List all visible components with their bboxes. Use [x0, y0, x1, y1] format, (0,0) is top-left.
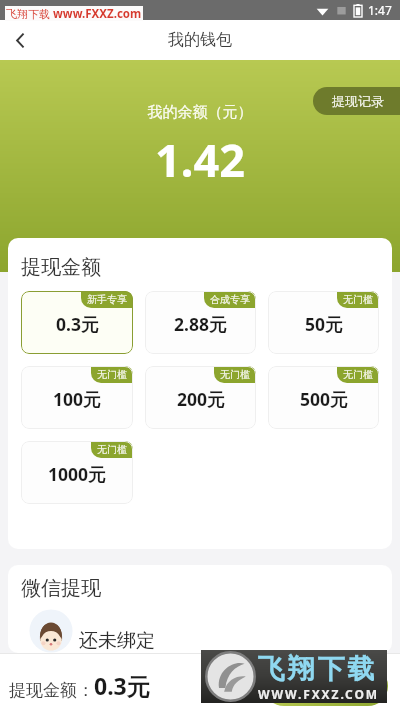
staticText: 无门槛: [343, 368, 373, 381]
staticText: 无门槛: [220, 368, 250, 381]
staticText: WWW.FXXZ.COM: [258, 686, 380, 702]
staticText: 0.3元: [94, 670, 150, 701]
staticText: 提现金额: [21, 255, 101, 280]
button[interactable]: 无门槛: [268, 366, 379, 429]
staticText: 提现金额：: [9, 680, 94, 701]
staticText: 1000元: [48, 462, 106, 486]
staticText: 还未绑定: [79, 629, 155, 653]
button[interactable]: 还未绑定: [21, 609, 379, 653]
button[interactable]: 新手专享: [21, 291, 133, 354]
staticText: 微信提现: [21, 576, 101, 601]
button[interactable]: 无门槛: [21, 366, 133, 429]
staticText: 0.3元: [56, 312, 99, 336]
staticText: 我的余额（元）: [0, 103, 400, 122]
staticText: 合成专享: [210, 293, 250, 306]
button[interactable]: 提现记录: [313, 87, 400, 115]
button[interactable]: 无门槛: [268, 291, 379, 354]
staticText: 2.88元: [174, 312, 227, 336]
staticText: 立即提现: [294, 676, 358, 696]
staticText: 新手专享: [87, 293, 127, 306]
staticText: 我的钱包: [168, 30, 232, 50]
staticText: 50元: [305, 312, 343, 336]
staticText: 飞翔下载: [6, 7, 50, 21]
button[interactable]: 合成专享: [145, 291, 256, 354]
staticText: 无门槛: [97, 368, 127, 381]
staticText: 1:47: [368, 2, 392, 18]
staticText: www.FXXZ.com: [53, 6, 142, 21]
button[interactable]: 无门槛: [21, 441, 133, 504]
staticText: 无门槛: [343, 293, 373, 306]
staticText: 飞翔下载: [256, 652, 376, 686]
staticText: 1.42: [0, 129, 400, 190]
staticText: 500元: [300, 387, 348, 411]
button[interactable]: Back: [0, 20, 40, 60]
staticText: 无门槛: [97, 443, 127, 456]
staticText: 200元: [177, 387, 225, 411]
staticText: 提现记录: [332, 93, 384, 109]
button[interactable]: 立即提现: [264, 666, 388, 706]
button[interactable]: 无门槛: [145, 366, 256, 429]
staticText: 100元: [53, 387, 101, 411]
